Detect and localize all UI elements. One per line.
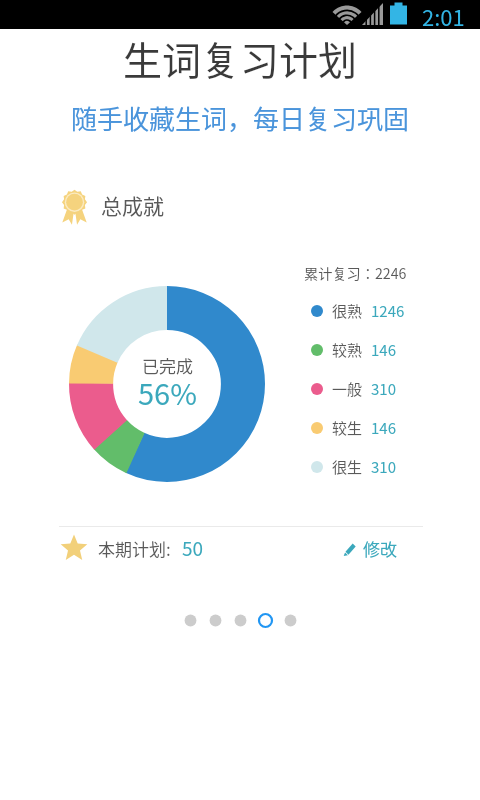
staticText: 生词复习计划 [123,30,358,86]
staticText: 2:01 [422,0,465,29]
staticText: 146 [371,417,396,439]
staticText: 随手收藏生词，每日复习巩固 [71,99,410,137]
button[interactable]: 很熟 [311,291,405,330]
staticText: 较生 [332,417,363,439]
button[interactable]: 较生 [311,408,396,447]
staticText: 一般 [332,378,363,400]
staticText: 146 [371,339,396,361]
button[interactable]: 总成就 [60,190,164,220]
button[interactable]: 本期计划: [60,533,193,563]
button[interactable]: 很生 [311,447,396,486]
staticText: 已完成 [142,353,193,378]
staticText: 累计复习：2246 [304,263,407,284]
button[interactable]: 一般 [311,369,396,408]
staticText: 310 [371,378,396,400]
staticText: 总成就 [101,190,164,220]
button[interactable]: 较熟 [311,330,396,369]
staticText: 50 [182,534,204,562]
staticText: 修改 [363,536,397,561]
staticText: 1246 [371,300,405,322]
staticText: 56% [138,371,197,413]
staticText: 较熟 [332,339,363,361]
staticText: 很生 [332,456,363,478]
button[interactable]: 修改 [341,533,397,563]
staticText: 310 [371,456,396,478]
staticText: 本期计划: [98,536,171,561]
staticText: 很熟 [332,300,363,322]
